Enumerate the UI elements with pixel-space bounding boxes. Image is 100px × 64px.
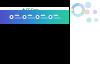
button[interactable]: CC.Com [0, 7, 69, 10]
staticText: CC.Com [26, 7, 39, 10]
